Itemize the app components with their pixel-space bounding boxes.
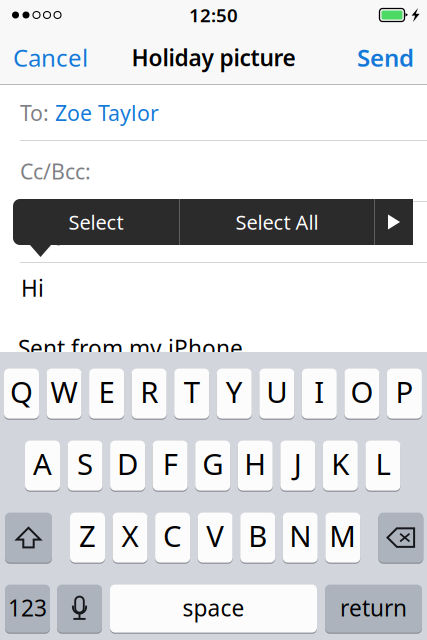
staticText: O <box>350 372 373 411</box>
button[interactable]: I <box>302 368 337 419</box>
staticText: G <box>202 444 223 483</box>
button[interactable]: Select All <box>180 199 374 245</box>
button[interactable]: W <box>46 368 81 419</box>
staticText: Z <box>79 516 96 555</box>
staticText: U <box>266 372 287 411</box>
button[interactable]: F <box>153 440 188 491</box>
button[interactable]: B <box>240 512 275 563</box>
button[interactable]: U <box>259 368 294 419</box>
staticText: Select All <box>235 209 318 235</box>
staticText: Q <box>10 372 33 411</box>
staticText: W <box>50 372 77 411</box>
staticText: Send <box>357 42 414 73</box>
staticText: E <box>99 372 115 411</box>
staticText: Select <box>68 209 123 235</box>
staticText: Y <box>226 372 243 411</box>
staticText: M <box>329 516 356 555</box>
button[interactable]: M <box>325 512 360 563</box>
button[interactable]: Y <box>217 368 252 419</box>
staticText: 12:50 <box>189 3 238 27</box>
button[interactable]: T <box>174 368 209 419</box>
staticText: Sent from my iPhone <box>18 333 243 363</box>
staticText: J <box>294 444 302 483</box>
button[interactable]: More actions <box>375 199 413 245</box>
button[interactable]: Dictation <box>57 584 102 633</box>
staticText: B <box>248 516 267 555</box>
staticText: Subject: <box>20 218 100 246</box>
button[interactable]: To: <box>0 85 427 141</box>
button[interactable]: S <box>67 440 102 491</box>
button[interactable]: A <box>25 440 60 491</box>
staticText: K <box>331 444 349 483</box>
button[interactable]: Q <box>4 368 39 419</box>
button[interactable]: 123 <box>5 584 50 633</box>
staticText: Hi <box>21 273 44 303</box>
staticText: N <box>289 516 311 555</box>
button[interactable]: Delete <box>378 512 423 563</box>
staticText: P <box>395 372 413 411</box>
button[interactable]: X <box>112 512 147 563</box>
staticText: V <box>206 516 224 555</box>
button[interactable]: return <box>325 584 422 633</box>
button[interactable]: Shift <box>5 512 52 563</box>
staticText: F <box>163 444 178 483</box>
button[interactable]: Send <box>317 30 427 85</box>
staticText: S <box>77 444 93 483</box>
button[interactable]: E <box>89 368 124 419</box>
staticText: Holiday picture <box>131 42 295 72</box>
button[interactable]: K <box>323 440 358 491</box>
staticText: L <box>375 444 390 483</box>
button[interactable]: Cc/Bcc: <box>0 141 427 202</box>
staticText: Cc/Bcc: <box>20 157 91 185</box>
button[interactable]: Select <box>13 199 179 245</box>
staticText: Cancel <box>13 42 88 73</box>
staticText: To: <box>20 98 49 127</box>
staticText: Zoe Taylor <box>49 98 159 127</box>
staticText: R <box>140 372 158 411</box>
button[interactable]: H <box>238 440 273 491</box>
button[interactable]: L <box>365 440 400 491</box>
staticText: 123 <box>8 592 47 623</box>
button[interactable]: D <box>110 440 145 491</box>
button[interactable]: G <box>195 440 230 491</box>
button[interactable]: Subject: <box>0 202 427 263</box>
button[interactable]: J <box>280 440 315 491</box>
staticText: space <box>182 592 244 623</box>
staticText: return <box>340 592 407 623</box>
staticText: D <box>117 444 138 483</box>
button[interactable]: V <box>198 512 233 563</box>
button[interactable]: space <box>110 584 317 633</box>
staticText: I <box>314 372 324 411</box>
button[interactable]: C <box>155 512 190 563</box>
staticText: C <box>163 516 182 555</box>
staticText: T <box>184 372 200 411</box>
staticText: H <box>244 444 266 483</box>
button[interactable]: Z <box>70 512 105 563</box>
button[interactable]: N <box>283 512 318 563</box>
staticText: A <box>33 444 52 483</box>
button[interactable]: Cancel <box>0 30 110 85</box>
button[interactable]: P <box>387 368 422 419</box>
staticText: X <box>121 516 138 555</box>
button[interactable]: O <box>344 368 379 419</box>
button[interactable]: R <box>132 368 167 419</box>
